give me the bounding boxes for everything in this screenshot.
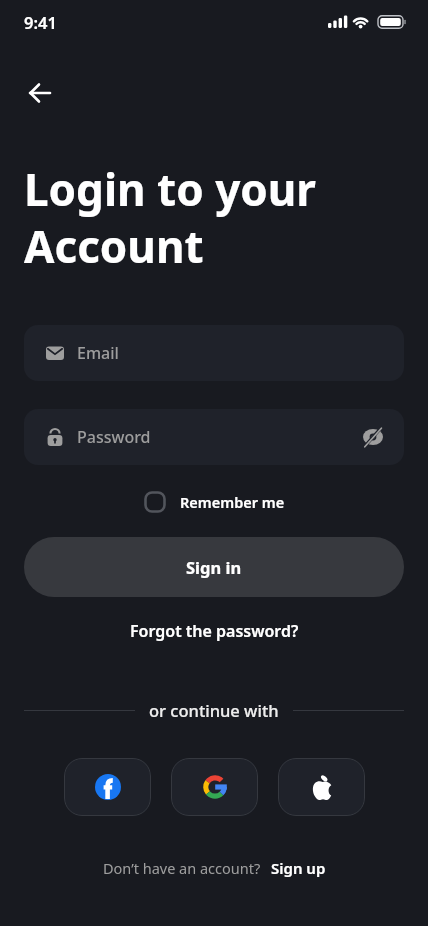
button[interactable]: Email <box>24 325 404 381</box>
button[interactable]: Sign in <box>24 537 404 597</box>
staticText: Forgot the password? <box>130 620 299 642</box>
button[interactable]: Remember me <box>24 491 404 513</box>
button[interactable] <box>64 758 151 816</box>
staticText: or continue with <box>149 699 279 721</box>
staticText: 9:41 <box>24 11 57 33</box>
staticText: Sign up <box>271 858 326 878</box>
button[interactable]: Forgot the password? <box>24 620 404 642</box>
button[interactable] <box>22 75 58 111</box>
button[interactable]: Password <box>24 409 404 465</box>
button[interactable] <box>171 758 258 816</box>
staticText: Password <box>77 426 362 448</box>
staticText: Remember me <box>180 492 285 512</box>
staticText: Don’t have an account? <box>103 858 261 878</box>
button[interactable]: Sign up <box>271 858 326 878</box>
staticText: Login to your Account <box>24 159 317 276</box>
staticText: Sign in <box>186 556 242 578</box>
staticText: Email <box>77 342 119 364</box>
button[interactable] <box>278 758 365 816</box>
